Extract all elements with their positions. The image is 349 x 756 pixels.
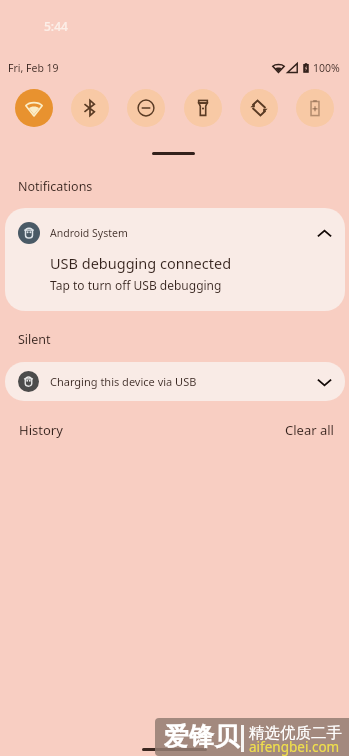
button[interactable]: Flashlight	[184, 89, 222, 127]
button[interactable]: Wi-Fi	[15, 89, 53, 127]
staticText: 100%	[313, 61, 340, 75]
staticText: Charging this device via USB	[50, 374, 197, 389]
staticText: USB debugging connected	[50, 253, 232, 273]
staticText: aifengbei.com	[249, 738, 340, 756]
staticText: 精选优质二手	[249, 723, 342, 743]
button[interactable]: Auto rotate	[240, 89, 278, 127]
button[interactable]: Collapse notification	[308, 217, 340, 249]
button[interactable]: Expand notification	[308, 366, 340, 398]
other: Wi-Fi signal	[272, 63, 285, 73]
button[interactable]: History	[19, 421, 63, 439]
other: Battery	[303, 63, 309, 73]
staticText: Tap to turn off USB debugging	[50, 277, 222, 293]
staticText: History	[19, 421, 63, 439]
staticText: Notifications	[18, 178, 93, 195]
button[interactable]: Charging this device via USB	[5, 362, 345, 401]
button[interactable]: Battery saver	[296, 89, 334, 127]
staticText: Clear all	[285, 421, 334, 439]
staticText: Silent	[18, 331, 51, 348]
staticText: Android System	[50, 226, 128, 240]
button[interactable]: Do not disturb	[127, 89, 165, 127]
button[interactable]: Clear all	[285, 421, 334, 439]
button[interactable]: Android System	[5, 208, 345, 311]
staticText: Fri, Feb 19	[8, 61, 59, 75]
button[interactable]: Bluetooth	[71, 89, 109, 127]
staticText: 爱锋贝	[164, 721, 239, 752]
button[interactable]: Expand quick settings	[152, 152, 195, 155]
staticText: 5:44	[44, 18, 68, 34]
other: Mobile signal	[287, 63, 298, 73]
